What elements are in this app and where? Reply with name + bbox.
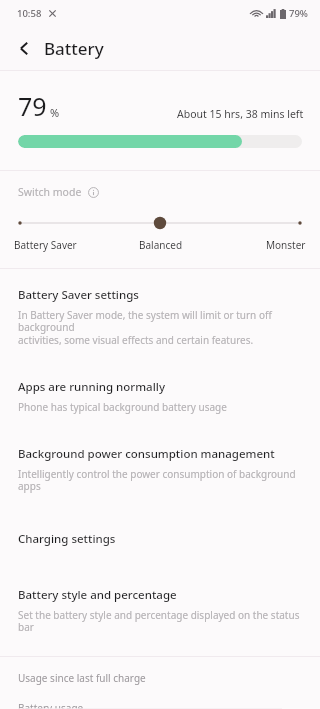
staticText: Usage since last full charge — [18, 671, 146, 685]
button[interactable]: Battery style and percentage — [0, 575, 320, 656]
staticText: Charging settings — [18, 531, 116, 547]
staticText: Battery — [44, 37, 104, 60]
staticText: Background power consumption management — [18, 446, 275, 462]
staticText: Balanced — [139, 238, 183, 252]
staticText: % — [50, 105, 60, 120]
staticText: Phone has typical background battery usa… — [18, 400, 227, 414]
staticText: In Battery Saver mode, the system will l… — [18, 308, 306, 347]
staticText: Battery style and percentage — [18, 587, 177, 603]
staticText: Monster — [266, 238, 306, 252]
staticText: Set the battery style and percentage dis… — [18, 608, 306, 634]
staticText: Battery Saver — [14, 238, 77, 252]
button[interactable]: Apps are running normally — [0, 367, 320, 434]
staticText: 10:58 — [17, 7, 42, 20]
button[interactable]: Battery mode slider — [0, 215, 320, 231]
staticText: Intelligently control the power consumpt… — [18, 467, 306, 493]
staticText: Apps are running normally — [18, 379, 165, 395]
button[interactable]: Info about switch mode — [87, 186, 100, 199]
staticText: Switch mode — [18, 185, 82, 199]
staticText: About 15 hrs, 38 mins left — [177, 107, 304, 121]
button[interactable]: Background power consumption management — [0, 434, 320, 519]
staticText: Battery usage — [18, 701, 84, 709]
button[interactable]: Back — [8, 32, 40, 64]
button[interactable]: Battery Saver settings — [0, 269, 320, 367]
staticText: 79 — [18, 89, 47, 123]
staticText: Battery Saver settings — [18, 287, 139, 303]
staticText: 79% — [289, 7, 308, 20]
button[interactable]: Charging settings — [0, 519, 320, 575]
